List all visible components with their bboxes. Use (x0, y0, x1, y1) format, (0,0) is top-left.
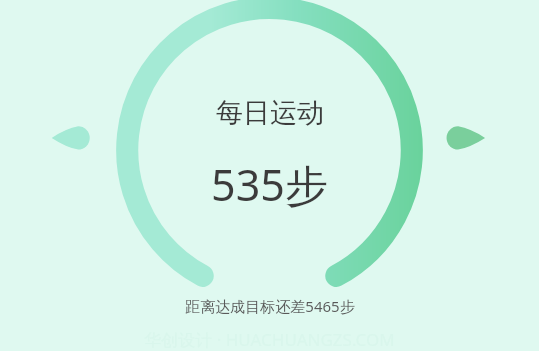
staticText: 535步 (211, 155, 328, 214)
button[interactable]: Daily step progress ring (0, 0, 539, 351)
staticText: 每日运动 (216, 96, 324, 130)
staticText: 距离达成目标还差5465步 (185, 296, 355, 316)
other: Daily step progress ring (0, 0, 539, 351)
